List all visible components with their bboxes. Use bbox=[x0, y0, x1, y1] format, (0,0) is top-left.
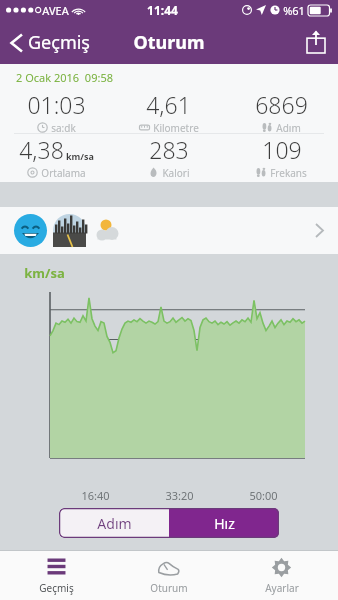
staticText: Kalori bbox=[162, 166, 190, 178]
staticText: sa:dk bbox=[51, 121, 76, 133]
staticText: Ayarlar bbox=[265, 581, 299, 595]
staticText: 16:40 bbox=[81, 488, 110, 503]
staticText: 6869 bbox=[255, 89, 308, 120]
staticText: km/sa bbox=[66, 150, 94, 162]
button[interactable]: Ayarlar bbox=[225, 551, 338, 600]
button[interactable]: Oturum bbox=[112, 551, 225, 600]
button[interactable] bbox=[0, 207, 338, 254]
staticText: 4,61 bbox=[146, 89, 191, 120]
staticText: 50:00 bbox=[249, 488, 278, 503]
button[interactable]: Geçmiş bbox=[0, 551, 112, 600]
staticText: Frekans bbox=[270, 166, 307, 178]
button[interactable]: Adım bbox=[59, 508, 169, 538]
button[interactable]: Geçmiş bbox=[0, 24, 100, 61]
staticText: Geçmiş bbox=[28, 30, 90, 55]
staticText: Ortalama bbox=[41, 166, 86, 178]
staticText: Oturum bbox=[150, 581, 188, 595]
staticText: Adım bbox=[276, 121, 301, 133]
button[interactable]: Share bbox=[294, 22, 338, 62]
staticText: 283 bbox=[149, 134, 189, 165]
staticText: Kilometre bbox=[153, 121, 199, 133]
staticText: km/sa bbox=[24, 264, 65, 282]
staticText: 01:03 bbox=[27, 89, 86, 120]
staticText: AVEA bbox=[42, 3, 69, 18]
staticText: 109 bbox=[262, 134, 302, 165]
staticText: Oturum bbox=[133, 30, 205, 55]
staticText: 33:20 bbox=[165, 488, 194, 503]
staticText: 2 Ocak 2016 09:58 bbox=[16, 70, 113, 85]
staticText: Adım bbox=[97, 514, 132, 533]
staticText: 11:44 bbox=[147, 2, 178, 18]
staticText: Hız bbox=[214, 514, 235, 533]
staticText: Geçmiş bbox=[39, 581, 74, 595]
staticText: 4,38 bbox=[19, 134, 64, 165]
staticText: %61 bbox=[283, 3, 305, 18]
button[interactable]: Hız bbox=[169, 508, 279, 538]
